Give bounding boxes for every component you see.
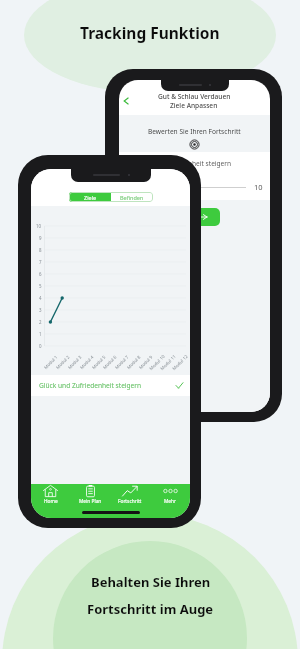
staticText: 10 [254,182,263,192]
staticText: Behalten Sie Ihren [91,573,211,591]
staticText: Modul 11 [159,353,177,371]
staticText: 2 [39,319,42,325]
button[interactable]: Zurück [120,95,132,107]
button[interactable]: Glück und Zufriedenheit steigern [31,375,190,396]
staticText: 10 [36,223,42,229]
button[interactable]: Ziele [69,192,111,202]
staticText: Modul 3 [66,354,83,370]
staticText: Befinden [120,194,144,201]
staticText: Modul 6 [101,354,118,370]
staticText: 5 [39,283,42,289]
staticText: Modul 4 [78,354,95,370]
staticText: Mehr [164,498,177,505]
staticText: 4 [39,295,42,301]
button[interactable]: Weiter [186,208,220,226]
button[interactable]: Befinden [111,192,153,202]
staticText: Bewerten Sie Ihren Fortschritt [148,127,241,136]
staticText: Modul 5 [90,354,107,370]
staticText: 6 [39,271,42,277]
staticText: Modul 10 [148,353,166,371]
button[interactable]: Fortschritt [110,484,150,505]
staticText: Modul 7 [113,354,130,370]
staticText: Ziele [84,194,97,201]
staticText: 3 [39,307,42,313]
staticText: Fortschritt im Auge [87,600,214,618]
staticText: 9 [39,235,42,241]
staticText: Home [44,498,58,505]
button[interactable]: Home [31,484,70,505]
staticText: Glück und Zufriedenheit steigern [39,381,142,390]
staticText: Mein Plan [79,498,102,505]
staticText: Modul 2 [54,354,71,370]
staticText: Gut & Schlau Verdauen [158,92,231,101]
staticText: Modul 9 [137,354,154,370]
staticText: 7 [39,259,42,265]
staticText: Ziele Anpassen [170,101,218,110]
button[interactable]: Mein Plan [70,484,110,505]
staticText: 8 [39,247,42,253]
staticText: Modul 12 [171,353,189,371]
staticText: Modul 1 [42,354,59,370]
staticText: Modul 8 [125,354,142,370]
staticText: 0 [39,343,42,349]
staticText: Tracking Funktion [80,22,220,43]
staticText: Fortschritt [118,498,142,505]
button[interactable]: Mehr [150,484,190,505]
staticText: 1 [39,331,42,337]
staticText: Glück und Zufriedenheit steigern [129,159,232,168]
